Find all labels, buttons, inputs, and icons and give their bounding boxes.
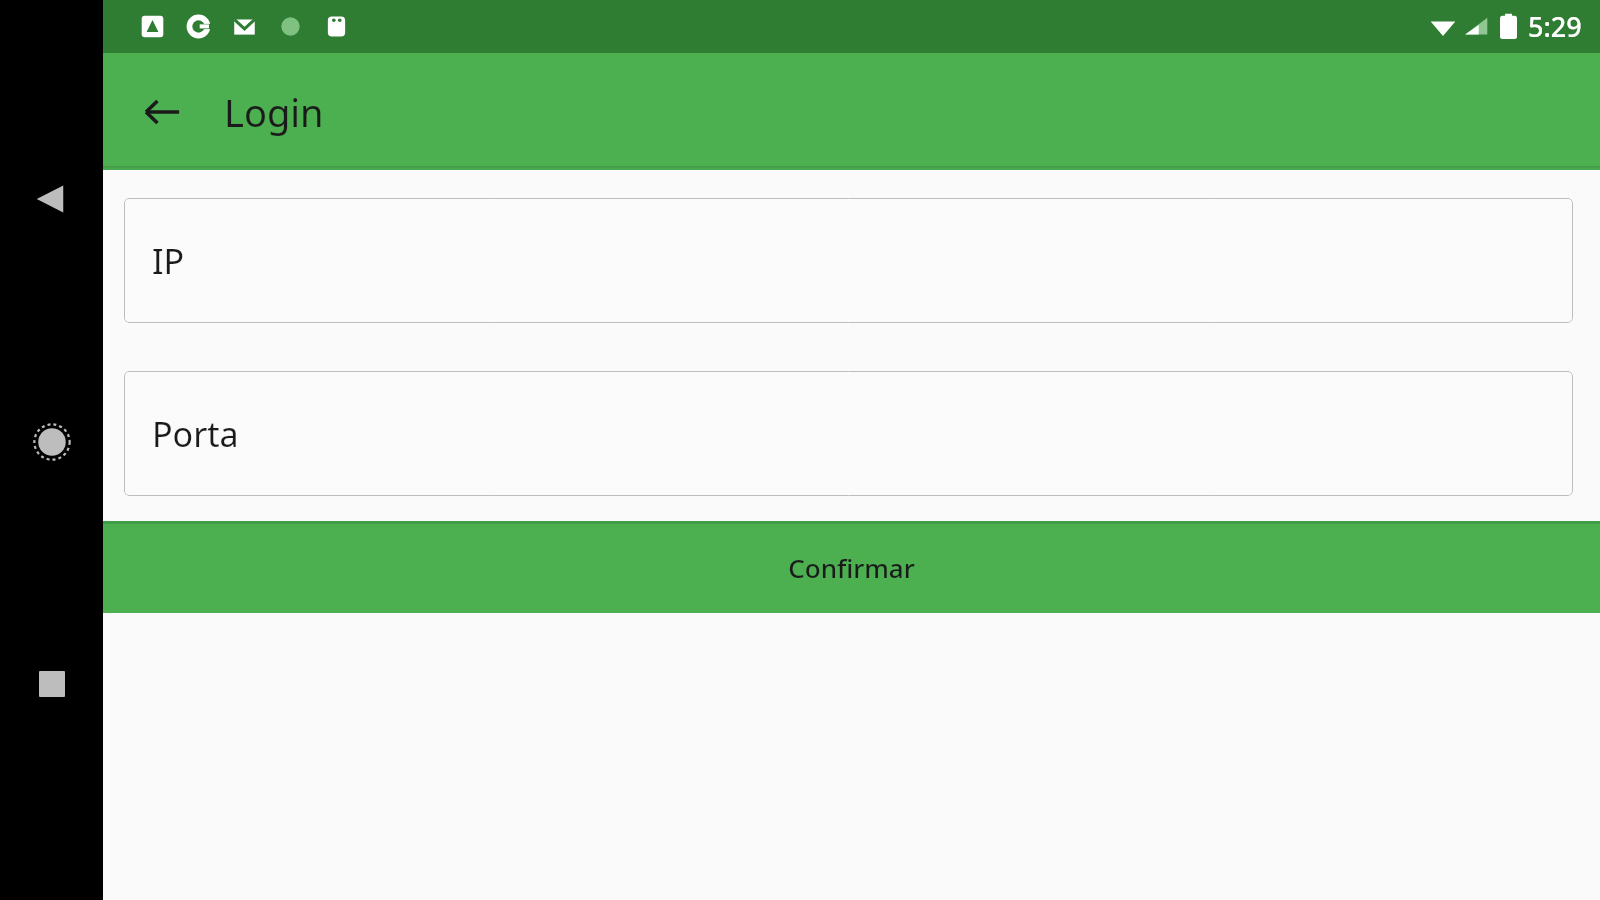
button[interactable]: Recent apps bbox=[26, 658, 78, 710]
staticText: Confirmar bbox=[788, 550, 915, 585]
staticText: IP bbox=[152, 238, 185, 284]
button[interactable]: Porta bbox=[124, 371, 1573, 496]
button[interactable]: Navigate up bbox=[131, 81, 193, 143]
staticText: 5:29 bbox=[1528, 8, 1582, 45]
button[interactable]: Confirmar bbox=[103, 521, 1600, 613]
button[interactable]: Back bbox=[24, 172, 78, 226]
staticText: Login bbox=[224, 86, 324, 138]
staticText: Porta bbox=[152, 411, 239, 457]
button[interactable]: IP bbox=[124, 198, 1573, 323]
button[interactable]: Home bbox=[24, 414, 80, 470]
